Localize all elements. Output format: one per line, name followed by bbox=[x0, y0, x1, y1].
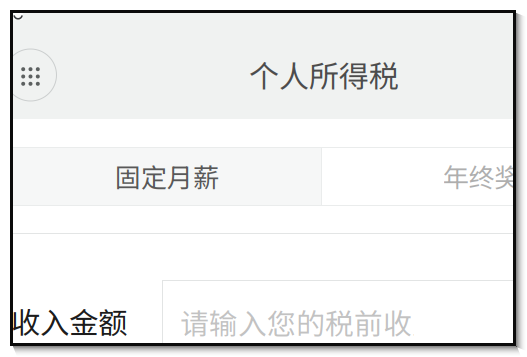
staticText: 固定月薪 bbox=[115, 157, 219, 195]
staticText: 请输入您的税前收入金额 bbox=[180, 301, 499, 343]
button[interactable]: 固定月薪 bbox=[13, 147, 321, 205]
button[interactable]: 个人所得税 bbox=[249, 55, 449, 93]
staticText: 年终奖金 bbox=[442, 157, 527, 195]
staticText: 收入金额 bbox=[11, 300, 127, 342]
staticText: 个人所得税 bbox=[249, 53, 399, 96]
button[interactable]: More bbox=[4, 49, 56, 101]
button[interactable]: 年终奖金 bbox=[322, 147, 527, 205]
